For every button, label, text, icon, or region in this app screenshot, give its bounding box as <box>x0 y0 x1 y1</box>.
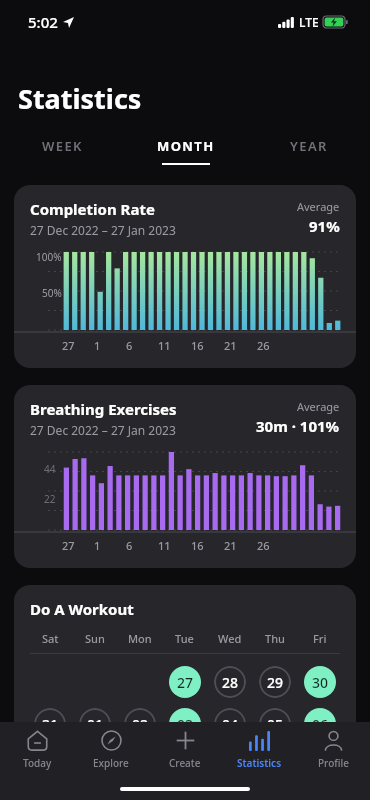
staticText: Completion Rate <box>30 199 155 219</box>
staticText: 1 <box>94 338 101 353</box>
staticText: 03 <box>177 715 194 734</box>
staticText: Average <box>297 399 340 414</box>
button[interactable]: YEAR <box>247 135 370 167</box>
button[interactable]: Explore <box>74 722 148 778</box>
staticText: Average <box>297 199 340 214</box>
staticText: 30m · 101% <box>256 416 340 436</box>
button[interactable]: 29 <box>259 666 291 698</box>
staticText: Statistics <box>237 756 282 770</box>
staticText: MONTH <box>157 137 215 155</box>
other: Today <box>27 730 48 751</box>
button[interactable]: Statistics <box>222 722 296 778</box>
staticText: Sat <box>42 631 59 646</box>
staticText: WEEK <box>42 137 83 155</box>
staticText: Tue <box>175 631 194 646</box>
staticText: Create <box>169 756 201 770</box>
staticText: 6 <box>126 338 133 353</box>
staticText: 27 Dec 2022 – 27 Jan 2023 <box>30 222 176 238</box>
staticText: Profile <box>318 756 349 770</box>
staticText: 100% <box>36 250 62 264</box>
staticText: 21 <box>224 338 237 353</box>
button[interactable]: Create <box>148 722 222 778</box>
staticText: 22 <box>44 492 56 506</box>
button[interactable]: MONTH <box>124 135 247 167</box>
staticText: Mon <box>128 631 152 646</box>
button[interactable]: Do A Workout <box>14 585 356 780</box>
staticText: 04 <box>222 715 239 734</box>
other: Profile <box>323 730 344 751</box>
other: Explore <box>101 730 122 751</box>
staticText: Statistics <box>18 80 142 117</box>
staticText: 27 <box>62 538 75 553</box>
other: Statistics <box>249 730 270 751</box>
staticText: LTE <box>299 14 319 30</box>
staticText: Thu <box>265 631 285 646</box>
staticText: Breathing Exercises <box>30 399 177 419</box>
button[interactable]: Today <box>0 722 74 778</box>
button[interactable]: 04 <box>214 708 246 740</box>
staticText: 26 <box>257 338 270 353</box>
staticText: 16 <box>191 538 204 553</box>
button[interactable]: 30 <box>304 666 336 698</box>
staticText: 28 <box>222 673 239 692</box>
staticText: 05 <box>267 715 284 734</box>
button[interactable]: 03 <box>169 708 201 740</box>
staticText: Sun <box>85 631 105 646</box>
staticText: YEAR <box>290 137 328 155</box>
staticText: 26 <box>257 538 270 553</box>
staticText: 1 <box>94 538 101 553</box>
staticText: 91% <box>309 216 340 236</box>
staticText: Wed <box>218 631 242 646</box>
staticText: Today <box>23 756 52 770</box>
button[interactable]: 27 <box>169 666 201 698</box>
staticText: 16 <box>191 338 204 353</box>
staticText: 27 <box>177 673 194 692</box>
button[interactable]: 06 <box>304 708 336 740</box>
button[interactable]: 05 <box>259 708 291 740</box>
staticText: 44 <box>44 462 56 476</box>
button[interactable]: WEEK <box>0 135 124 167</box>
staticText: 27 Dec 2022 – 27 Jan 2023 <box>30 422 176 438</box>
staticText: 29 <box>267 673 284 692</box>
button[interactable]: 31 <box>34 708 66 740</box>
staticText: 21 <box>224 538 237 553</box>
staticText: 02 <box>132 715 149 734</box>
staticText: Explore <box>93 756 129 770</box>
button[interactable]: 02 <box>124 708 156 740</box>
other: Create <box>175 730 196 751</box>
staticText: 01 <box>87 715 104 734</box>
staticText: 30 <box>312 673 329 692</box>
staticText: 11 <box>158 338 171 353</box>
button[interactable]: 01 <box>79 708 111 740</box>
button[interactable]: Profile <box>296 722 370 778</box>
staticText: Do A Workout <box>30 599 134 619</box>
button[interactable]: Breathing Exercises <box>14 385 356 568</box>
staticText: 6 <box>126 538 133 553</box>
staticText: Fri <box>313 631 327 646</box>
staticText: 11 <box>158 538 171 553</box>
button[interactable]: 28 <box>214 666 246 698</box>
staticText: 06 <box>312 715 329 734</box>
staticText: 31 <box>42 715 59 734</box>
button[interactable]: Completion Rate <box>14 185 356 368</box>
staticText: 27 <box>62 338 75 353</box>
staticText: 50% <box>42 286 62 300</box>
staticText: 5:02 <box>28 12 58 32</box>
